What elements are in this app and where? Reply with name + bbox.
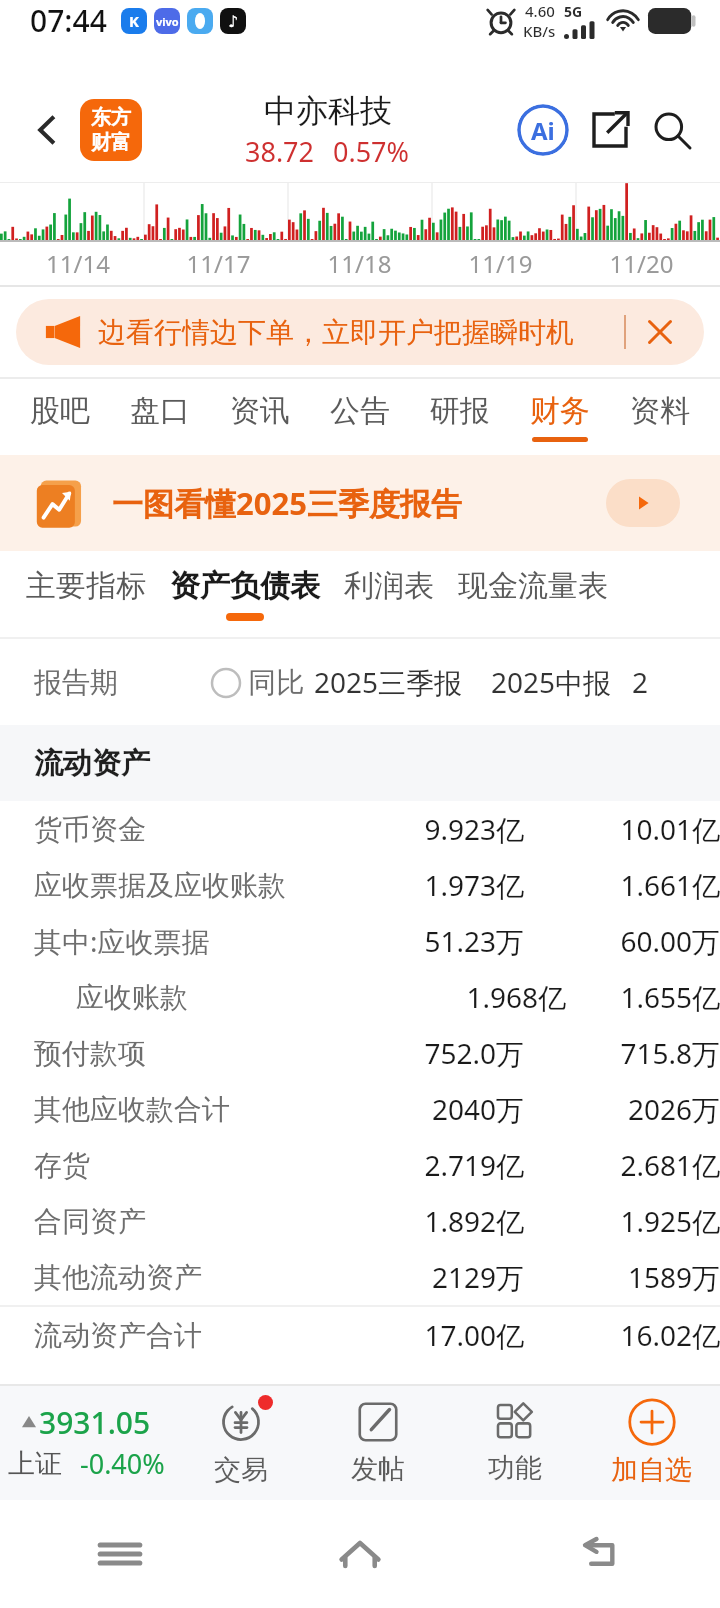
button[interactable]: 资产负债表 (170, 551, 320, 637)
staticText: 1.973亿 (364, 866, 524, 904)
staticText: 2025中报 (491, 663, 612, 701)
button[interactable]: 应收账款 (0, 969, 720, 1025)
staticText: 上证 (8, 1447, 62, 1481)
staticText: 2025三季报 (314, 663, 463, 701)
staticText: 2026万 (560, 1090, 720, 1128)
button[interactable]: 返回 (480, 1500, 720, 1608)
button[interactable]: 发帖 (309, 1384, 446, 1500)
staticText: 0.57% (333, 133, 410, 170)
staticText: 752.0万 (364, 1034, 524, 1072)
button[interactable]: 东方财富 (80, 99, 142, 161)
staticText: 11/20 (571, 247, 712, 280)
staticText: 其中:应收票据 (34, 922, 364, 960)
staticText: 发帖 (351, 1452, 405, 1486)
staticText: 1.892亿 (364, 1202, 524, 1240)
staticText: 3931.05 (39, 1402, 151, 1443)
button[interactable]: 搜索 (644, 102, 700, 158)
button[interactable]: 盘口 (110, 379, 210, 455)
staticText: 资产负债表 (170, 567, 320, 605)
button[interactable]: 财务 (510, 379, 610, 455)
button[interactable]: 预付款项 (0, 1025, 720, 1081)
staticText: 同比 (248, 665, 304, 700)
staticText: 10.01亿 (560, 810, 720, 848)
staticText: 存货 (34, 1148, 364, 1183)
staticText: 4.60 (525, 1, 555, 21)
button[interactable]: 其中:应收票据 (0, 913, 720, 969)
staticText: 应收账款 (76, 980, 406, 1015)
staticText: 流动资产 (34, 745, 150, 782)
staticText: 货币资金 (34, 812, 364, 847)
button[interactable]: 资讯 (210, 379, 310, 455)
staticText: ♪ (228, 12, 239, 31)
staticText: 主要指标 (26, 567, 146, 605)
staticText: 报告期 (34, 665, 118, 700)
button[interactable]: 边看行情边下单，立即开户把握瞬时机 (16, 299, 704, 365)
staticText: 1589万 (560, 1258, 720, 1296)
button[interactable]: 合同资产 (0, 1193, 720, 1249)
button[interactable]: 主页 (240, 1500, 480, 1608)
staticText: 财务 (530, 392, 590, 430)
staticText: 加自选 (611, 1453, 692, 1487)
staticText: 1.925亿 (560, 1202, 720, 1240)
staticText: 边看行情边下单，立即开户把握瞬时机 (98, 315, 620, 350)
staticText: 应收票据及应收账款 (34, 868, 364, 903)
staticText: 11/19 (430, 247, 571, 280)
button[interactable]: 其他流动资产 (0, 1249, 720, 1305)
staticText: 11/18 (289, 247, 430, 280)
button[interactable]: 其他应收款合计 (0, 1081, 720, 1137)
staticText: 利润表 (344, 567, 434, 605)
staticText: Ai (531, 114, 555, 147)
staticText: 38.72 (245, 133, 315, 170)
button[interactable]: 公告 (310, 379, 410, 455)
staticText: 现金流量表 (458, 567, 608, 605)
button[interactable]: 研报 (410, 379, 510, 455)
button[interactable]: 最近任务 (0, 1500, 240, 1608)
staticText: 1.661亿 (560, 866, 720, 904)
staticText: 5G (564, 2, 583, 21)
button[interactable]: 交易 (172, 1384, 309, 1500)
button[interactable]: 同比 (210, 665, 304, 700)
staticText: 一图看懂2025三季度报告 (112, 482, 462, 524)
staticText: KB/s (523, 21, 556, 41)
button[interactable]: 一图看懂2025三季度报告 (0, 455, 720, 551)
button[interactable]: 货币资金 (0, 801, 720, 857)
staticText: 60.00万 (560, 922, 720, 960)
staticText: 资料 (630, 392, 690, 430)
button[interactable]: AI (514, 101, 572, 159)
staticText: 16.02亿 (560, 1316, 720, 1354)
button[interactable]: 加自选 (583, 1384, 720, 1500)
button[interactable]: 分享 (582, 102, 638, 158)
staticText: 9.923亿 (364, 810, 524, 848)
staticText: 盘口 (130, 392, 190, 430)
staticText: 11/14 (8, 247, 148, 280)
staticText: 公告 (330, 392, 390, 430)
button[interactable]: 3931.05 (0, 1384, 172, 1500)
staticText: -0.40% (80, 1445, 165, 1482)
staticText: 1.655亿 (602, 978, 720, 1016)
button[interactable]: 查看 (606, 479, 680, 527)
staticText: 11/17 (148, 247, 289, 280)
staticText: 流动资产合计 (34, 1318, 364, 1353)
staticText: vivo (156, 14, 179, 29)
button[interactable]: 股吧 (10, 379, 110, 455)
button[interactable]: 主要指标 (26, 551, 146, 637)
staticText: 07:44 (30, 0, 107, 41)
button[interactable]: 应收票据及应收账款 (0, 857, 720, 913)
staticText: 715.8万 (560, 1034, 720, 1072)
staticText: 17.00亿 (364, 1316, 524, 1354)
button[interactable]: 存货 (0, 1137, 720, 1193)
button[interactable]: 现金流量表 (458, 551, 608, 637)
staticText: 51.23万 (364, 922, 524, 960)
staticText: 2129万 (364, 1258, 524, 1296)
button[interactable]: 利润表 (344, 551, 434, 637)
staticText: 2040万 (364, 1090, 524, 1128)
staticText: 交易 (214, 1453, 268, 1487)
button[interactable]: 关闭 (640, 312, 680, 352)
staticText: 其他流动资产 (34, 1260, 364, 1295)
button[interactable]: 功能 (446, 1384, 583, 1500)
staticText: 东方 (91, 105, 131, 130)
staticText: 研报 (430, 392, 490, 430)
button[interactable]: 资料 (610, 379, 710, 455)
button[interactable]: 返回 (20, 103, 74, 157)
staticText: 股吧 (30, 392, 90, 430)
